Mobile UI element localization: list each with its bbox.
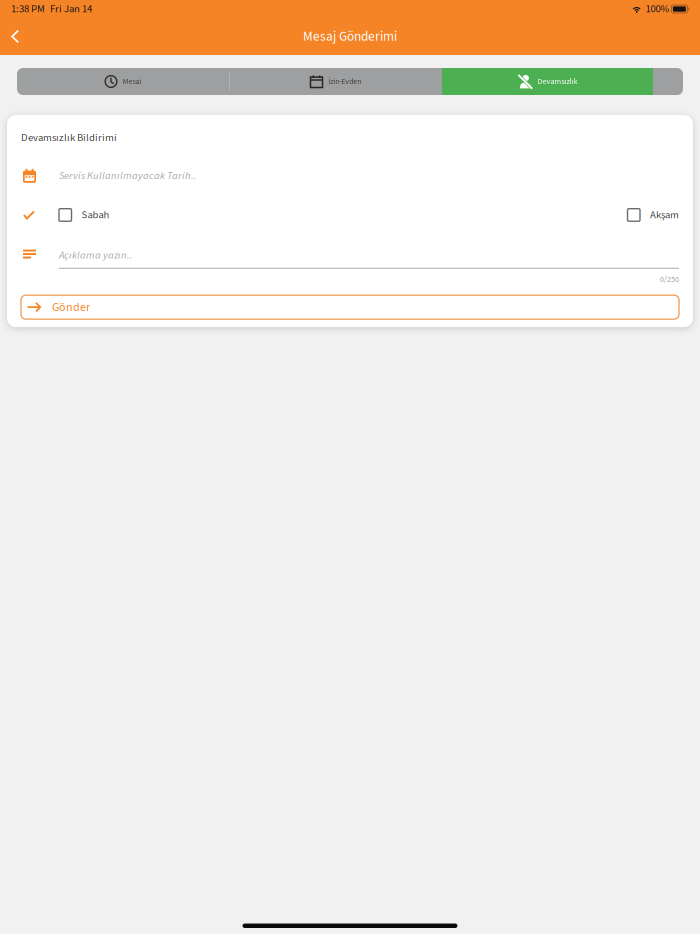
button[interactable]: İzin-Evden: [229, 68, 442, 95]
staticText: Fri Jan 14: [50, 1, 92, 17]
staticText: Açıklama yazın..: [59, 248, 133, 263]
button[interactable]: Back: [0, 20, 33, 52]
staticText: Sabah: [81, 207, 109, 223]
staticText: 1:38 PM: [11, 1, 45, 17]
staticText: 100%: [645, 1, 669, 17]
staticText: Mesai: [122, 76, 141, 87]
staticText: Servis Kullanılmayacak Tarih..: [59, 168, 197, 183]
staticText: Devamsızlık: [537, 76, 577, 87]
staticText: Akşam: [650, 207, 679, 223]
button[interactable]: Devamsızlık: [442, 68, 653, 95]
button[interactable]: Mesai: [17, 68, 229, 95]
staticText: İzin-Evden: [328, 76, 361, 87]
button[interactable]: Gönder: [21, 295, 679, 319]
staticText: Mesaj Gönderimi: [303, 27, 397, 46]
staticText: Devamsızlık Bildirimi: [21, 130, 117, 145]
staticText: 0/250: [660, 274, 679, 285]
staticText: Gönder: [52, 299, 90, 316]
